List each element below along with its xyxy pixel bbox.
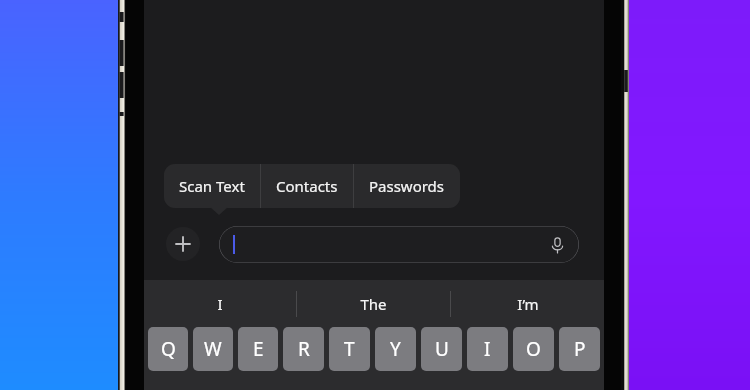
button[interactable]: Contacts: [261, 164, 353, 208]
staticText: I: [484, 336, 491, 362]
button[interactable]: Y: [375, 327, 416, 371]
staticText: E: [253, 336, 264, 362]
button[interactable]: T: [329, 327, 370, 371]
button[interactable]: W: [193, 327, 233, 371]
staticText: U: [435, 336, 449, 362]
staticText: Contacts: [276, 176, 338, 196]
staticText: I: [217, 294, 223, 314]
staticText: R: [298, 336, 310, 362]
staticText: Y: [390, 336, 401, 362]
button[interactable]: P: [559, 327, 600, 371]
button[interactable]: Dictate: [544, 232, 570, 258]
staticText: W: [204, 336, 222, 362]
button[interactable]: E: [238, 327, 278, 371]
staticText: O: [526, 336, 541, 362]
button[interactable]: Q: [148, 327, 188, 371]
staticText: T: [344, 336, 355, 362]
button[interactable]: Add attachment: [166, 227, 200, 261]
button[interactable]: I’m: [451, 280, 604, 327]
staticText: I’m: [517, 294, 539, 314]
button[interactable]: Dictate: [219, 226, 579, 263]
button[interactable]: O: [513, 327, 554, 371]
button[interactable]: R: [283, 327, 324, 371]
button[interactable]: Scan Text: [164, 164, 260, 208]
button[interactable]: I: [467, 327, 508, 371]
staticText: Passwords: [369, 176, 445, 196]
button[interactable]: I: [144, 280, 296, 327]
staticText: P: [574, 336, 586, 362]
staticText: Scan Text: [179, 176, 245, 196]
staticText: The: [360, 294, 387, 314]
staticText: Q: [161, 336, 176, 362]
button[interactable]: The: [297, 280, 450, 327]
button[interactable]: U: [421, 327, 462, 371]
button[interactable]: Passwords: [354, 164, 460, 208]
